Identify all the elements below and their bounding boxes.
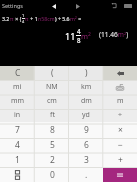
button[interactable]: dm [69, 94, 103, 108]
button[interactable]: 9 [69, 122, 103, 137]
button[interactable]: − [103, 137, 137, 152]
button[interactable]: ft [35, 108, 69, 122]
staticText: 6 [84, 139, 89, 151]
button[interactable]: . [69, 167, 103, 182]
button[interactable]: C [0, 66, 35, 80]
button[interactable]: 5 [35, 137, 69, 152]
staticText: 0 [50, 169, 55, 181]
staticText: ft [50, 110, 55, 120]
staticText: 5 [50, 139, 55, 151]
staticText: mi [13, 82, 22, 92]
button[interactable]: Keypad [122, 0, 133, 11]
button[interactable]: mm [0, 94, 35, 108]
staticText: 7 [15, 124, 20, 136]
button[interactable]: 7 [0, 122, 35, 137]
button[interactable]: in [0, 108, 35, 122]
button[interactable]: ÷ [103, 108, 137, 122]
button[interactable]: 8 [35, 122, 69, 137]
staticText: 4 [77, 27, 81, 35]
staticText: dm [81, 96, 92, 106]
staticText: Settings [2, 2, 23, 9]
button[interactable]: Backspace [103, 66, 137, 80]
button[interactable]: 0 [35, 167, 69, 182]
staticText: km [81, 82, 92, 92]
staticText: m [117, 96, 124, 106]
button[interactable]: km [69, 80, 103, 94]
staticText: 11 [65, 30, 76, 42]
staticText: 4 [22, 19, 25, 24]
button[interactable]: m [103, 94, 137, 108]
staticText: × ( [14, 15, 22, 22]
staticText: 3 [84, 154, 89, 166]
staticText: 8 [77, 36, 81, 44]
button[interactable]: Equals [103, 167, 137, 182]
staticText: in [14, 110, 21, 120]
staticText: yd [82, 110, 90, 120]
staticText: + 1 [29, 15, 38, 22]
staticText: × [118, 124, 123, 136]
staticText: 3.2 [2, 15, 10, 22]
button[interactable]: Previous [49, 1, 59, 11]
staticText: mm [11, 96, 25, 106]
staticText: 1 [22, 13, 25, 18]
button[interactable]: + [103, 152, 137, 167]
staticText: (11.46m2) [99, 30, 129, 39]
button[interactable]: Keyboard [103, 80, 137, 94]
staticText: 4 [15, 139, 20, 151]
button[interactable]: yd [69, 108, 103, 122]
button[interactable]: cm [35, 94, 69, 108]
button[interactable]: Settings [0, 1, 26, 10]
button[interactable]: 3 [69, 152, 103, 167]
staticText: n58cm [38, 15, 55, 22]
staticText: + [118, 154, 123, 166]
button[interactable]: 6 [69, 137, 103, 152]
button[interactable]: ( [35, 66, 69, 80]
staticText: ) + 5.6 [55, 15, 70, 22]
staticText: m2 [70, 15, 77, 22]
staticText: . [85, 169, 88, 181]
button[interactable]: Fraction [0, 167, 35, 182]
staticText: m2 [81, 31, 91, 41]
staticText: ) [85, 67, 88, 79]
button[interactable]: 4 [0, 137, 35, 152]
staticText: 8 [50, 124, 55, 136]
staticText: 2 [50, 154, 55, 166]
button[interactable]: 2 [35, 152, 69, 167]
staticText: ( [51, 67, 54, 79]
button[interactable]: × [103, 122, 137, 137]
staticText: 1 [15, 154, 20, 166]
button[interactable]: mi [0, 80, 35, 94]
staticText: NM [46, 82, 58, 92]
button[interactable]: ) [69, 66, 103, 80]
button[interactable]: NM [35, 80, 69, 94]
staticText: C [15, 67, 21, 79]
staticText: ÷ [118, 110, 123, 120]
button[interactable]: 1 [0, 152, 35, 167]
staticText: π [10, 15, 14, 22]
staticText: = [77, 15, 82, 22]
staticText: 9 [84, 124, 89, 136]
staticText: − [118, 139, 123, 151]
staticText: cm [47, 96, 57, 106]
button[interactable]: Next [73, 1, 83, 11]
staticText: π [25, 15, 29, 22]
button[interactable]: Undo [108, 0, 119, 11]
